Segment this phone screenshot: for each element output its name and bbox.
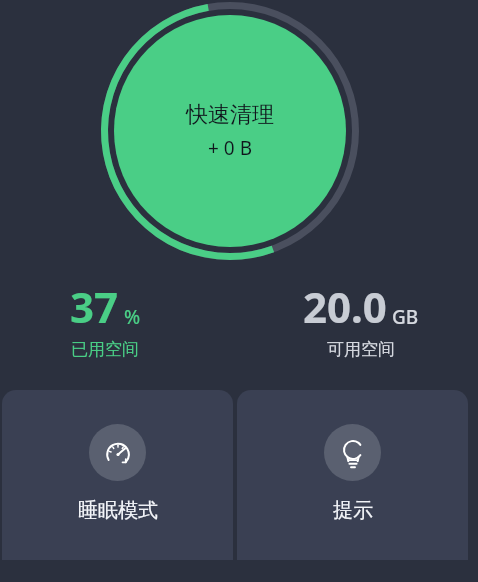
staticText: 提示 — [333, 498, 373, 523]
staticText: + 0 B — [208, 135, 252, 161]
button[interactable]: Tips — [237, 390, 468, 560]
other: Tips — [324, 424, 381, 481]
staticText: 睡眠模式 — [78, 498, 158, 523]
staticText: 37 — [70, 278, 119, 335]
staticText: 可用空间 — [327, 339, 395, 360]
other: Sleep mode — [89, 424, 146, 481]
button[interactable]: 快速清理 — [101, 2, 359, 260]
staticText: 已用空间 — [71, 339, 139, 360]
staticText: 快速清理 — [186, 101, 274, 129]
staticText: % — [124, 304, 141, 330]
staticText: GB — [392, 304, 419, 330]
button[interactable]: Sleep mode — [2, 390, 233, 560]
staticText: 20.0 — [303, 278, 387, 335]
